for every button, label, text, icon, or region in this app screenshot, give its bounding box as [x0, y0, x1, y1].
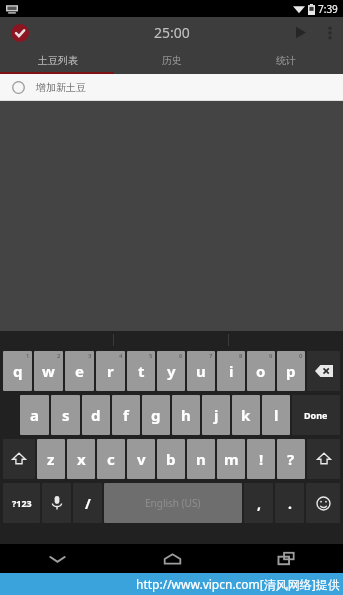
button[interactable]: App logo: [9, 22, 31, 44]
button[interactable]: m: [217, 439, 245, 479]
button[interactable]: p: [277, 351, 305, 391]
staticText: o: [256, 361, 266, 381]
staticText: http://www.vipcn.com[清风网络]提供: [136, 576, 340, 592]
button[interactable]: Start timer: [283, 17, 317, 48]
button[interactable]: Voice input: [42, 483, 71, 523]
button[interactable]: !: [247, 439, 275, 479]
staticText: 7: [209, 352, 213, 360]
button[interactable]: u: [187, 351, 215, 391]
button[interactable]: a: [20, 395, 49, 435]
staticText: .: [288, 494, 292, 513]
button[interactable]: q: [3, 351, 32, 391]
staticText: t: [138, 361, 145, 381]
staticText: 历史: [162, 54, 182, 67]
button[interactable]: 增加新土豆: [0, 74, 343, 100]
button[interactable]: Shift: [3, 439, 35, 479]
button[interactable]: l: [262, 395, 290, 435]
staticText: ,: [257, 494, 261, 513]
staticText: q: [13, 361, 23, 381]
button[interactable]: h: [172, 395, 200, 435]
button[interactable]: w: [34, 351, 63, 391]
staticText: s: [62, 405, 70, 425]
button[interactable]: x: [67, 439, 95, 479]
button[interactable]: Shift: [307, 439, 340, 479]
button[interactable]: o: [247, 351, 275, 391]
button[interactable]: y: [157, 351, 185, 391]
staticText: h: [181, 405, 191, 425]
staticText: 6: [179, 352, 183, 360]
staticText: u: [196, 361, 206, 381]
button[interactable]: d: [82, 395, 110, 435]
staticText: a: [30, 405, 39, 425]
button[interactable]: 统计: [229, 48, 343, 72]
staticText: c: [107, 449, 115, 469]
staticText: 25:00: [154, 23, 190, 42]
button[interactable]: ?: [277, 439, 305, 479]
staticText: d: [91, 405, 101, 425]
staticText: j: [214, 405, 219, 425]
button[interactable]: .: [275, 483, 304, 523]
button[interactable]: Delete: [307, 351, 340, 391]
staticText: 9: [269, 352, 273, 360]
button[interactable]: 土豆列表: [0, 48, 115, 72]
staticText: r: [107, 361, 114, 381]
staticText: m: [224, 449, 239, 469]
staticText: y: [167, 361, 176, 381]
button[interactable]: 历史: [115, 48, 229, 72]
button[interactable]: /: [73, 483, 102, 523]
staticText: 土豆列表: [38, 54, 78, 67]
staticText: 5: [149, 352, 153, 360]
staticText: 1: [26, 352, 30, 360]
staticText: x: [77, 449, 86, 469]
button[interactable]: ?123: [3, 483, 40, 523]
button[interactable]: Home: [115, 544, 229, 573]
button[interactable]: i: [217, 351, 245, 391]
staticText: 8: [239, 352, 243, 360]
staticText: e: [75, 361, 84, 381]
staticText: ?123: [12, 497, 32, 509]
button[interactable]: k: [232, 395, 260, 435]
button[interactable]: Space: [104, 483, 242, 523]
staticText: v: [137, 449, 146, 469]
button[interactable]: b: [157, 439, 185, 479]
button[interactable]: Recent apps: [229, 544, 343, 573]
button[interactable]: ,: [244, 483, 273, 523]
staticText: b: [166, 449, 176, 469]
staticText: l: [274, 405, 279, 425]
button[interactable]: j: [202, 395, 230, 435]
staticText: !: [259, 449, 264, 469]
button[interactable]: c: [97, 439, 125, 479]
button[interactable]: e: [65, 351, 94, 391]
staticText: 3: [88, 352, 92, 360]
staticText: g: [151, 405, 161, 425]
staticText: 0: [299, 352, 303, 360]
button[interactable]: f: [112, 395, 140, 435]
button[interactable]: v: [127, 439, 155, 479]
staticText: 统计: [276, 54, 296, 67]
staticText: w: [42, 361, 55, 381]
button[interactable]: Done: [292, 395, 340, 435]
staticText: k: [241, 405, 251, 425]
staticText: 4: [119, 352, 123, 360]
button[interactable]: n: [187, 439, 215, 479]
button[interactable]: s: [51, 395, 80, 435]
staticText: English (US): [145, 496, 201, 510]
button[interactable]: r: [96, 351, 125, 391]
button[interactable]: z: [37, 439, 65, 479]
staticText: 增加新土豆: [36, 81, 86, 94]
staticText: Done: [304, 409, 328, 421]
staticText: n: [196, 449, 206, 469]
staticText: 2: [57, 352, 61, 360]
button[interactable]: Hide keyboard: [0, 544, 115, 573]
button[interactable]: t: [127, 351, 155, 391]
staticText: ?: [287, 449, 295, 469]
staticText: f: [123, 405, 129, 425]
staticText: 7:39: [318, 2, 338, 16]
staticText: p: [286, 361, 296, 381]
button[interactable]: g: [142, 395, 170, 435]
button[interactable]: Emoji: [306, 483, 340, 523]
